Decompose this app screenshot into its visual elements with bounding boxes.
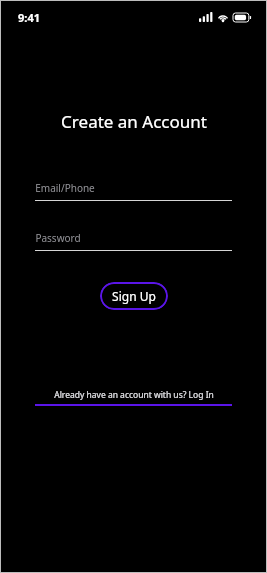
staticText: Already have an account with us? Log In	[54, 389, 214, 401]
button[interactable]: Password	[35, 231, 232, 251]
staticText: Email/Phone	[35, 181, 95, 195]
staticText: Create an Account	[61, 110, 207, 133]
button[interactable]: Email/Phone	[35, 181, 232, 201]
button[interactable]: Sign Up	[100, 282, 168, 310]
staticText: Password	[35, 231, 81, 245]
button[interactable]: Already have an account with us? Log In	[35, 389, 232, 406]
other: Wi-Fi	[217, 12, 229, 22]
staticText: 9:41	[18, 10, 40, 25]
staticText: Sign Up	[112, 288, 156, 304]
other: Cellular signal	[199, 12, 213, 22]
other: Battery	[233, 13, 251, 22]
